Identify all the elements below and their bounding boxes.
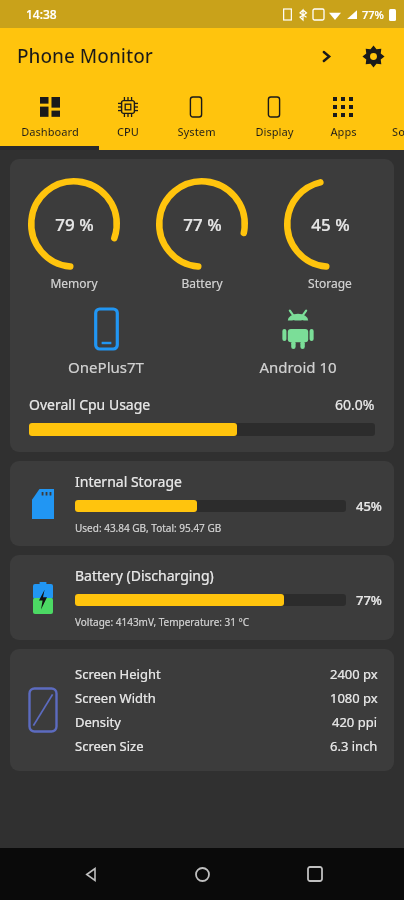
button[interactable]: 79 % [10, 159, 394, 452]
button[interactable]: CPU [83, 83, 173, 150]
button[interactable]: So [353, 83, 404, 150]
staticText: Screen Size [75, 737, 144, 755]
staticText: 77 % [183, 213, 222, 236]
button[interactable]: Display [229, 83, 319, 150]
staticText: Overall Cpu Usage [29, 395, 151, 414]
staticText: Android 10 [259, 357, 337, 377]
staticText: 45 % [311, 213, 350, 236]
staticText: Display [255, 124, 294, 139]
button[interactable]: More [308, 38, 344, 74]
staticText: Density [75, 713, 121, 731]
staticText: 45% [356, 497, 382, 515]
staticText: 77% [362, 7, 384, 22]
staticText: 77% [356, 591, 382, 609]
staticText: 14:38 [26, 6, 57, 22]
staticText: Screen Width [75, 689, 156, 707]
staticText: 6.3 inch [330, 737, 378, 755]
button[interactable]: Internal Storage [10, 461, 394, 546]
staticText: 79 % [55, 213, 94, 236]
staticText: Internal Storage [75, 472, 182, 491]
staticText: Used: 43.84 GB, Total: 95.47 GB [75, 521, 222, 535]
staticText: 1080 px [330, 689, 378, 707]
staticText: OnePlus7T [68, 357, 144, 377]
staticText: 420 ppi [332, 713, 378, 731]
button[interactable]: Screen Height [10, 649, 394, 771]
button[interactable]: Recents [292, 851, 338, 897]
staticText: Storage [308, 275, 352, 291]
staticText: So [392, 124, 404, 139]
button[interactable]: System [151, 83, 241, 150]
staticText: Phone Monitor [17, 43, 153, 69]
staticText: CPU [117, 124, 139, 139]
staticText: Apps [330, 124, 357, 139]
staticText: Voltage: 4143mV, Temperature: 31 °C [75, 615, 250, 629]
button[interactable]: Battery (Discharging) [10, 555, 394, 640]
staticText: 2400 px [330, 665, 378, 683]
staticText: Dashboard [21, 124, 79, 139]
button[interactable]: Home [179, 851, 225, 897]
staticText: Memory [50, 275, 98, 291]
staticText: Battery (Discharging) [75, 566, 214, 585]
button[interactable]: Dashboard [5, 83, 95, 150]
staticText: System [177, 124, 216, 139]
staticText: Screen Height [75, 665, 161, 683]
staticText: Battery [181, 275, 223, 291]
button[interactable]: Apps [298, 83, 388, 150]
button[interactable]: Back [67, 851, 113, 897]
staticText: 60.0% [335, 395, 375, 414]
button[interactable]: Settings [352, 35, 394, 77]
